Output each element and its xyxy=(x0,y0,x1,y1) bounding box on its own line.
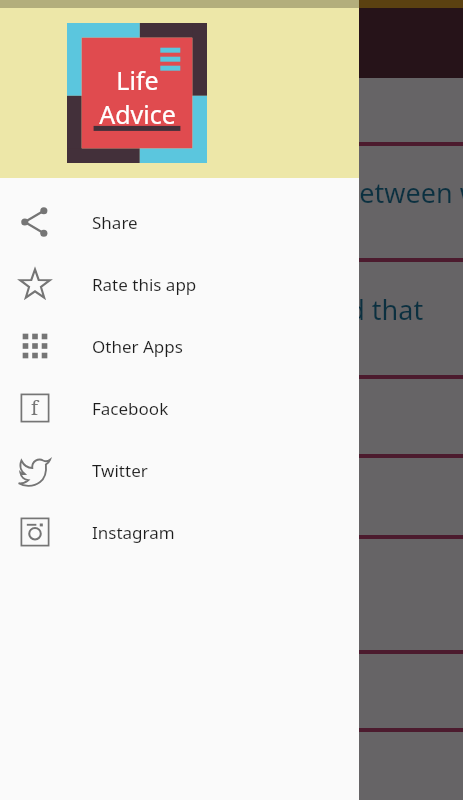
staticText: Choose wisely. xyxy=(132,469,317,506)
staticText: Rate this app xyxy=(92,273,197,296)
other: Facebook xyxy=(18,391,52,425)
button[interactable]: Instagram xyxy=(0,501,359,563)
staticText: Twitter xyxy=(92,459,148,482)
button[interactable]: Other Apps xyxy=(0,315,359,377)
staticText: Life xyxy=(116,63,159,97)
other: Twitter xyxy=(18,453,52,487)
staticText: Facebook xyxy=(92,397,169,420)
other: Share xyxy=(18,205,52,239)
button[interactable]: Rate this app xyxy=(0,253,359,315)
staticText: Share xyxy=(92,211,138,234)
staticText: f xyxy=(31,395,39,421)
button[interactable]: Facebook xyxy=(0,377,359,439)
other: Other Apps xyxy=(18,329,52,363)
button[interactable]: Twitter xyxy=(0,439,359,501)
other: Rate this app xyxy=(18,267,52,301)
staticText: Advice xyxy=(99,97,176,131)
staticText: Other Apps xyxy=(92,335,183,358)
staticText: you want now and that xyxy=(132,291,424,328)
other: Instagram xyxy=(18,515,52,549)
button[interactable]: Share xyxy=(0,191,359,253)
staticText: Instagram xyxy=(92,521,175,544)
staticText: is the difference between what xyxy=(132,174,463,211)
